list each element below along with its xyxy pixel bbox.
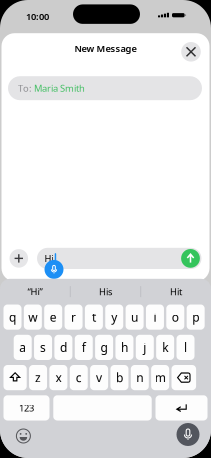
staticText: r: [71, 309, 76, 325]
button[interactable]: p: [187, 304, 205, 330]
button[interactable]: Send: [179, 247, 201, 269]
button[interactable]: b: [110, 365, 128, 390]
staticText: g: [101, 339, 108, 355]
staticText: w: [28, 309, 37, 325]
button[interactable]: Delete: [171, 365, 196, 390]
button[interactable]: z: [29, 365, 47, 390]
button[interactable]: s: [34, 335, 52, 360]
button[interactable]: To:: [8, 76, 202, 100]
button[interactable]: o: [166, 304, 184, 330]
button[interactable]: y: [105, 304, 123, 330]
staticText: f: [82, 339, 86, 355]
staticText: s: [40, 339, 46, 355]
button[interactable]: Shift: [3, 365, 27, 390]
button[interactable]: t: [85, 304, 103, 330]
staticText: His: [99, 285, 112, 298]
button[interactable]: g: [95, 335, 113, 360]
staticText: q: [9, 309, 16, 325]
button[interactable]: Hit: [141, 279, 211, 304]
staticText: z: [35, 370, 41, 385]
button[interactable]: f: [75, 335, 93, 360]
staticText: c: [76, 370, 82, 385]
staticText: 10:00: [26, 10, 49, 23]
staticText: t: [92, 309, 96, 325]
staticText: Hit: [170, 285, 182, 298]
button[interactable]: i: [146, 304, 164, 330]
button[interactable]: w: [24, 304, 42, 330]
staticText: To:: [18, 82, 34, 94]
button[interactable]: n: [131, 365, 149, 390]
staticText: b: [116, 370, 123, 385]
button[interactable]: l: [176, 335, 194, 360]
button[interactable]: v: [90, 365, 108, 390]
button[interactable]: Emoji keyboard: [10, 423, 36, 449]
staticText: y: [111, 309, 117, 325]
button[interactable]: r: [65, 304, 83, 330]
staticText: p: [192, 309, 199, 325]
button[interactable]: Add attachment: [7, 246, 31, 270]
staticText: Maria Smith: [34, 82, 85, 94]
staticText: o: [172, 309, 179, 325]
staticText: m: [155, 370, 166, 385]
staticText: e: [50, 309, 57, 325]
button[interactable]: Close: [178, 39, 204, 65]
button[interactable]: “Hi”: [0, 279, 70, 304]
staticText: New Message: [74, 42, 136, 55]
staticText: i: [153, 309, 156, 325]
button[interactable]: d: [54, 335, 72, 360]
staticText: d: [60, 339, 67, 355]
staticText: k: [162, 339, 168, 355]
button[interactable]: Return: [155, 395, 207, 420]
button[interactable]: Hi: [37, 248, 201, 269]
staticText: u: [131, 309, 138, 325]
button[interactable]: e: [44, 304, 62, 330]
staticText: Hi: [44, 252, 53, 265]
staticText: a: [19, 339, 26, 355]
staticText: l: [184, 339, 187, 355]
button[interactable]: m: [151, 365, 169, 390]
staticText: n: [136, 370, 143, 385]
button[interactable]: His: [71, 279, 140, 304]
button[interactable]: x: [49, 365, 67, 390]
staticText: v: [96, 370, 102, 385]
button[interactable]: j: [136, 335, 154, 360]
button[interactable]: 123: [3, 395, 49, 420]
button[interactable]: u: [126, 304, 144, 330]
button[interactable]: c: [70, 365, 88, 390]
staticText: x: [55, 370, 61, 385]
button[interactable]: k: [156, 335, 174, 360]
button[interactable]: a: [14, 335, 32, 360]
button[interactable]: Dictation: [174, 420, 202, 448]
staticText: “Hi”: [27, 285, 42, 298]
button[interactable]: q: [3, 304, 21, 330]
staticText: j: [143, 339, 146, 355]
staticText: h: [121, 339, 128, 355]
button[interactable]: h: [115, 335, 133, 360]
button[interactable]: space: [53, 395, 152, 420]
staticText: 123: [19, 402, 34, 414]
